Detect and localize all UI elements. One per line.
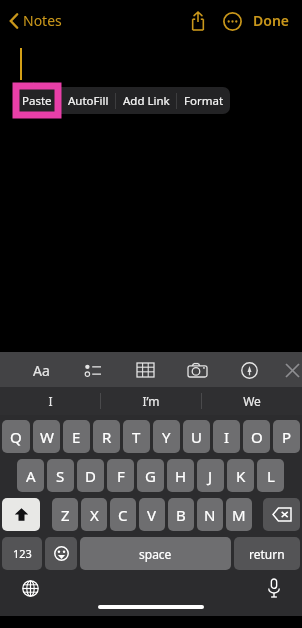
button[interactable]: O <box>243 420 270 453</box>
staticText: Aa <box>33 361 50 380</box>
button[interactable]: Table <box>132 357 158 383</box>
staticText: space <box>139 546 172 562</box>
staticText: Q <box>10 427 22 447</box>
button[interactable]: More options <box>217 6 247 36</box>
button[interactable]: Add Link <box>116 87 176 114</box>
button[interactable]: F <box>107 459 134 492</box>
staticText: N <box>204 505 216 525</box>
button[interactable]: P <box>273 420 300 453</box>
staticText: 123 <box>13 546 32 561</box>
button[interactable]: L <box>257 459 284 492</box>
staticText: G <box>145 466 156 486</box>
button[interactable]: A <box>17 459 44 492</box>
button[interactable]: Markup <box>236 357 262 383</box>
staticText: Paste <box>22 93 52 109</box>
staticText: J <box>208 466 213 486</box>
staticText: S <box>56 466 65 486</box>
button[interactable]: Q <box>2 420 30 453</box>
staticText: L <box>267 466 275 486</box>
staticText: C <box>118 505 128 525</box>
button[interactable]: 123 <box>2 537 42 570</box>
staticText: U <box>191 427 202 447</box>
staticText: Add Link <box>123 93 170 109</box>
button[interactable]: U <box>183 420 210 453</box>
staticText: M <box>232 505 246 525</box>
staticText: AutoFill <box>68 93 109 109</box>
button[interactable]: Shift <box>2 498 40 531</box>
staticText: T <box>132 427 141 447</box>
button[interactable]: G <box>137 459 164 492</box>
button[interactable]: W <box>33 420 60 453</box>
staticText: H <box>175 466 187 486</box>
staticText: V <box>147 505 157 525</box>
staticText: O <box>251 427 263 447</box>
button[interactable]: Emoji <box>45 537 77 570</box>
button[interactable]: Delete <box>263 498 300 531</box>
staticText: return <box>249 546 285 562</box>
button[interactable]: Dictation <box>260 574 288 602</box>
button[interactable]: Format <box>177 87 230 114</box>
button[interactable]: Paste <box>14 87 60 114</box>
button[interactable]: Camera <box>184 357 210 383</box>
button[interactable]: return <box>234 537 300 570</box>
staticText: R <box>102 427 112 447</box>
staticText: I <box>48 393 53 409</box>
button[interactable]: Done <box>249 5 294 36</box>
staticText: Y <box>162 427 171 447</box>
button[interactable]: J <box>197 459 224 492</box>
button[interactable]: space <box>80 537 231 570</box>
button[interactable]: E <box>63 420 90 453</box>
button[interactable]: V <box>139 498 165 531</box>
button[interactable]: I <box>213 420 240 453</box>
staticText: K <box>236 466 246 486</box>
staticText: Z <box>61 505 70 525</box>
button[interactable]: Y <box>153 420 180 453</box>
button[interactable]: Switch language <box>16 574 44 602</box>
button[interactable]: N <box>197 498 223 531</box>
staticText: E <box>72 427 81 447</box>
staticText: I <box>224 427 230 447</box>
button[interactable]: Notes <box>6 7 65 34</box>
button[interactable]: D <box>77 459 104 492</box>
staticText: W <box>40 427 54 447</box>
button[interactable]: Z <box>52 498 78 531</box>
staticText: X <box>90 505 99 525</box>
staticText: A <box>26 466 36 486</box>
button[interactable]: T <box>123 420 150 453</box>
button[interactable]: M <box>226 498 252 531</box>
staticText: Format <box>184 93 224 109</box>
button[interactable]: R <box>93 420 120 453</box>
button[interactable]: X <box>81 498 107 531</box>
staticText: P <box>282 427 292 447</box>
button[interactable]: We <box>202 387 302 415</box>
button[interactable]: I <box>0 387 100 415</box>
staticText: I’m <box>142 393 160 409</box>
button[interactable]: Share <box>183 6 213 36</box>
staticText: Notes <box>23 11 62 30</box>
button[interactable]: K <box>227 459 254 492</box>
staticText: D <box>85 466 96 486</box>
button[interactable]: I’m <box>101 387 201 415</box>
button[interactable]: Checklist <box>80 357 106 383</box>
button[interactable]: S <box>47 459 74 492</box>
staticText: B <box>176 505 186 525</box>
button[interactable]: AutoFill <box>61 87 115 114</box>
staticText: We <box>243 393 261 409</box>
button[interactable]: B <box>168 498 194 531</box>
button[interactable]: H <box>167 459 194 492</box>
button[interactable]: C <box>110 498 136 531</box>
button[interactable]: Text format <box>28 357 54 383</box>
staticText: F <box>117 466 125 486</box>
staticText: Done <box>253 11 290 30</box>
button[interactable]: Close keyboard <box>282 356 302 384</box>
